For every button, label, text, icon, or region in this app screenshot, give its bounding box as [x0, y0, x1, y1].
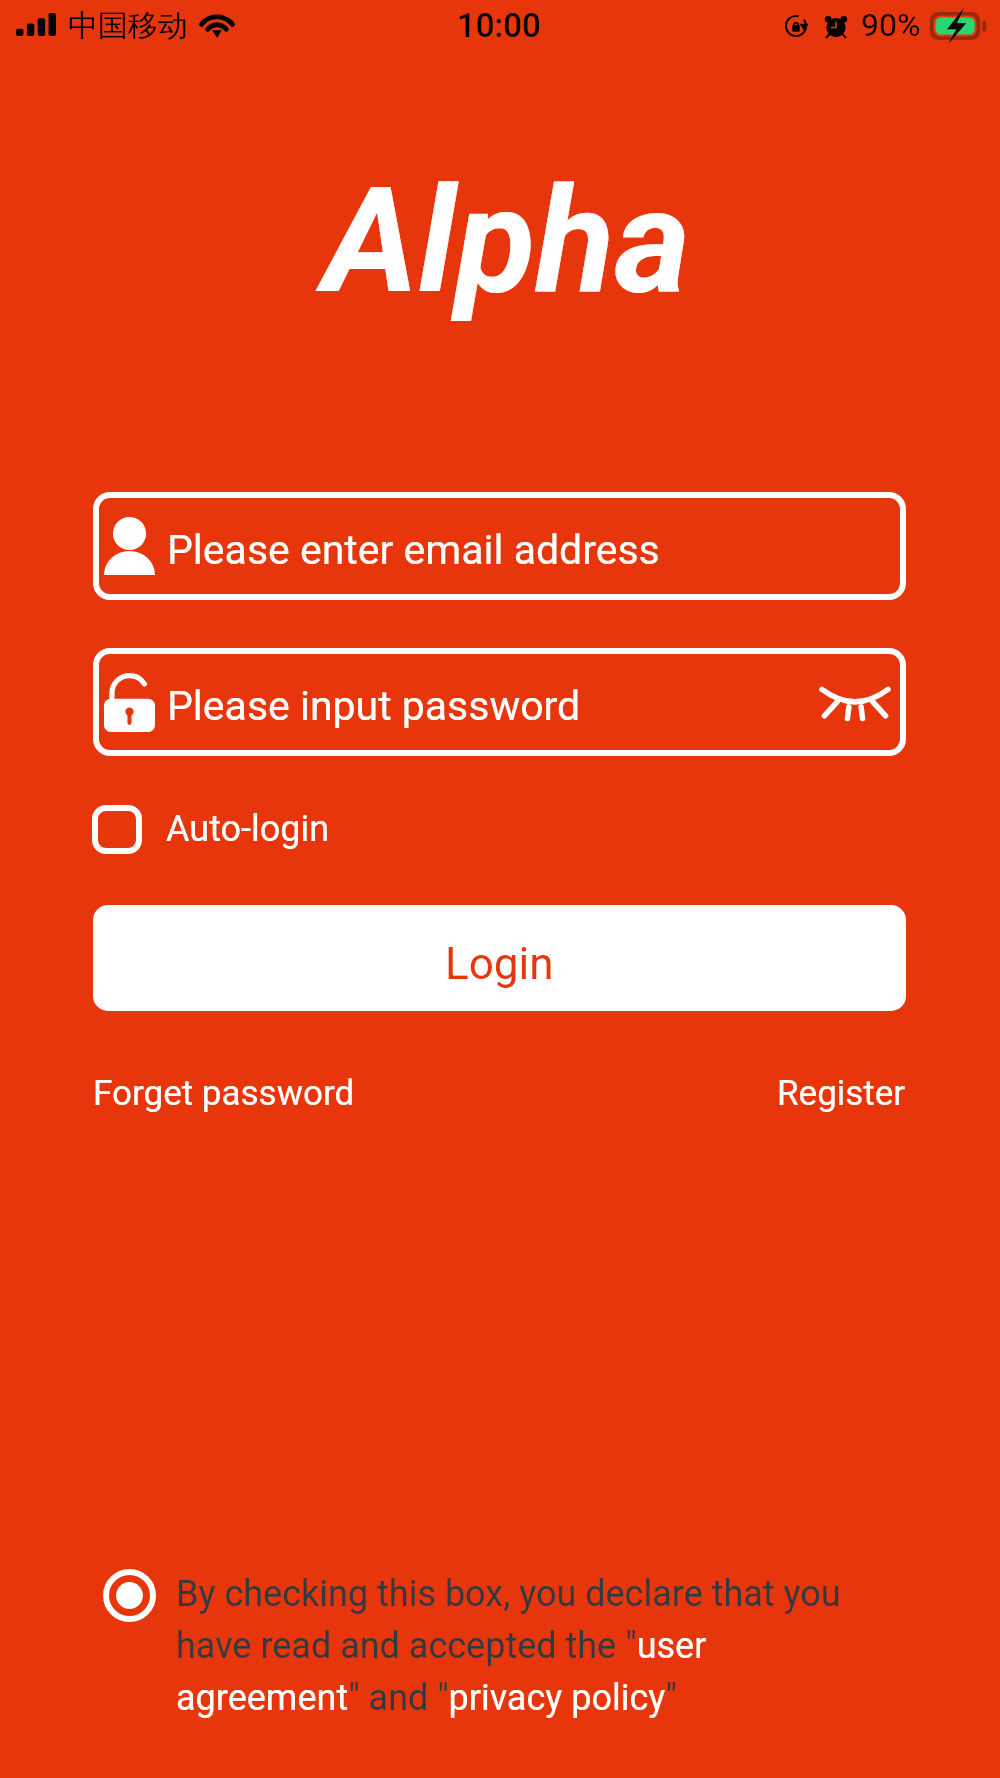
- staticText: Please enter email address: [167, 526, 660, 574]
- button[interactable]: By checking this box, you declare that y…: [103, 1564, 863, 1710]
- staticText: 中国移动: [68, 7, 188, 45]
- staticText: Login: [445, 938, 554, 990]
- staticText: Auto-login: [166, 808, 330, 850]
- button[interactable]: Please enter email address: [93, 492, 906, 600]
- staticText: Please input password: [167, 682, 817, 730]
- button[interactable]: Please input password: [93, 648, 906, 756]
- button[interactable]: Register: [777, 1060, 906, 1120]
- staticText: Register: [777, 1073, 906, 1114]
- button[interactable]: Forget password: [93, 1060, 355, 1120]
- staticText: Forget password: [93, 1073, 355, 1114]
- button[interactable]: Auto-login: [92, 800, 330, 858]
- staticText: 90%: [861, 6, 921, 44]
- button[interactable]: Show password: [817, 675, 893, 729]
- staticText: By checking this box, you declare that y…: [176, 1573, 863, 1719]
- staticText: Alpha: [323, 156, 691, 327]
- staticText: 10:00: [457, 6, 541, 45]
- button[interactable]: Login: [93, 905, 906, 1011]
